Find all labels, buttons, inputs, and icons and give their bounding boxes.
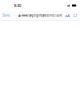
staticText: 8:30 [14,3,21,8]
staticText: Done [2,14,10,17]
staticText: ᴀA [65,13,70,18]
staticText: www.targetgiftcardcenter.com [21,14,61,17]
button[interactable]: Reload [71,12,77,19]
button[interactable]: Done [1,12,11,19]
button[interactable]: www.targetgiftcardcenter.com [18,12,62,19]
button[interactable]: Text size [65,11,71,20]
